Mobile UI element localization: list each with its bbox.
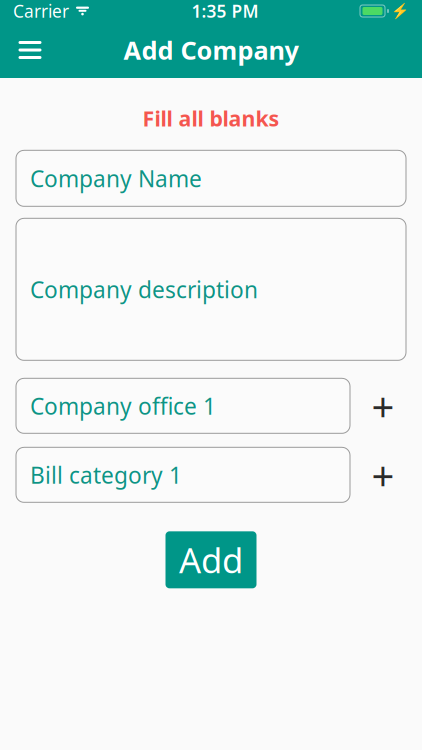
staticText: Company description xyxy=(30,274,258,304)
button[interactable]: Company description xyxy=(16,218,406,360)
staticText: Carrier xyxy=(13,0,69,22)
button[interactable]: Company Name xyxy=(16,150,406,206)
staticText: ⚡ xyxy=(391,3,409,19)
button[interactable]: Bill category 1 xyxy=(16,447,350,502)
staticText: + xyxy=(371,448,394,501)
button[interactable]: Add another xyxy=(360,452,406,498)
staticText: Company office 1 xyxy=(30,391,216,421)
staticText: Add xyxy=(179,537,243,583)
staticText: Company Name xyxy=(30,163,202,193)
button[interactable]: Company office 1 xyxy=(16,378,350,433)
button[interactable]: Menu xyxy=(8,28,52,72)
button[interactable]: Add xyxy=(165,531,256,588)
staticText: + xyxy=(371,379,394,432)
staticText: Add Company xyxy=(123,33,298,67)
button[interactable]: Add another xyxy=(360,383,406,429)
staticText: 1:35 PM xyxy=(191,0,258,22)
staticText: Bill category 1 xyxy=(30,460,182,490)
staticText: Fill all blanks xyxy=(142,104,279,132)
